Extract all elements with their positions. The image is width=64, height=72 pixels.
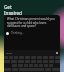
button[interactable]: Thinking… (6, 31, 58, 35)
staticText: What Christmas present would you suggest… (7, 17, 57, 27)
staticText: Get (4, 4, 12, 10)
staticText: Inspired (4, 10, 22, 15)
staticText: Thinking… (11, 31, 24, 35)
staticText: What (6, 51, 12, 54)
